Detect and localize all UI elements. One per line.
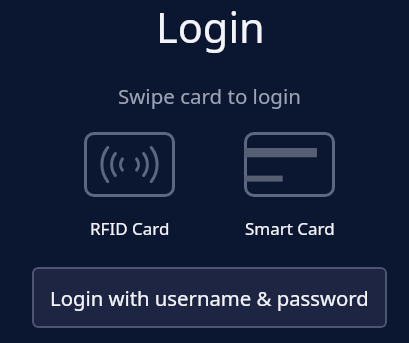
staticText: Login with username & password [50,284,369,312]
staticText: Smart Card [245,217,335,240]
staticText: RFID Card [90,217,170,240]
staticText: Login [156,0,265,56]
button[interactable]: Smart Card [244,132,335,197]
staticText: Swipe card to login [118,82,301,110]
button[interactable]: RFID Card [84,132,175,197]
button[interactable]: Login with username & password [32,267,387,328]
